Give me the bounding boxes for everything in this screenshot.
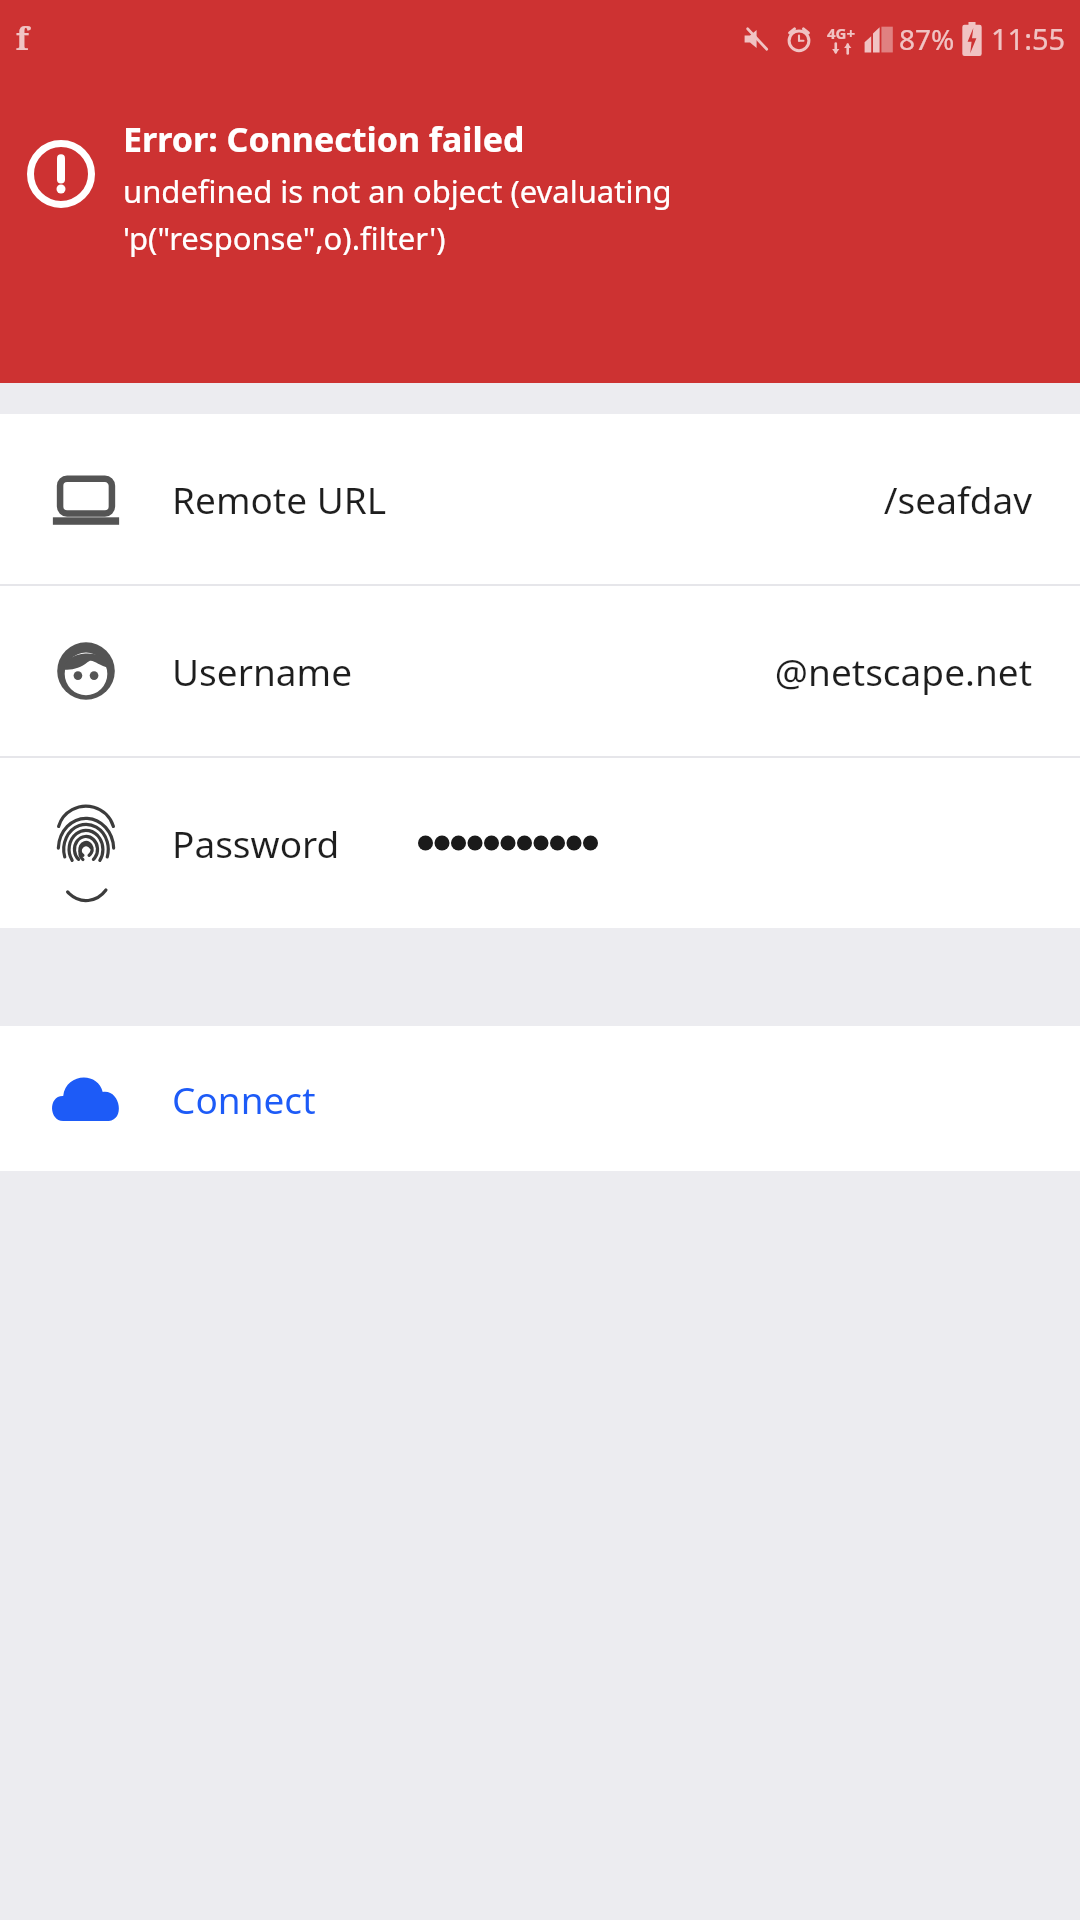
staticText: f bbox=[16, 17, 29, 59]
button[interactable]: Connect bbox=[0, 1026, 1080, 1171]
staticText: Remote URL bbox=[172, 474, 387, 524]
staticText: 87% bbox=[899, 20, 955, 58]
staticText: 4G+ bbox=[827, 23, 856, 43]
staticText: @netscape.net bbox=[774, 646, 1032, 696]
staticText: /seafdav bbox=[883, 474, 1032, 524]
staticText: Error: Connection failed bbox=[123, 116, 525, 162]
staticText: 11:55 bbox=[991, 19, 1066, 58]
button[interactable]: Remote URL bbox=[0, 414, 1080, 584]
staticText: Username bbox=[172, 646, 353, 696]
staticText: undefined is not an object (evaluating '… bbox=[123, 170, 672, 259]
staticText: Password bbox=[172, 818, 340, 868]
button[interactable]: Error: Connection failed bbox=[0, 76, 1080, 383]
button[interactable]: Username bbox=[0, 586, 1080, 756]
staticText: Connect bbox=[172, 1074, 316, 1124]
button[interactable]: Password bbox=[0, 758, 1080, 928]
